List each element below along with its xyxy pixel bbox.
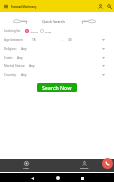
staticText: Religion: — [4, 47, 17, 51]
button[interactable]: Call us — [102, 158, 113, 169]
button[interactable]: Search Now — [37, 83, 77, 92]
button[interactable]: Country: — [0, 70, 114, 79]
button[interactable]: Register — [71, 159, 97, 172]
button[interactable]: My profile — [96, 0, 105, 12]
staticText: Any — [29, 64, 35, 68]
staticText: Search Now — [42, 84, 72, 91]
button[interactable]: Caste: — [0, 53, 114, 62]
button[interactable]: Login — [13, 159, 39, 172]
button[interactable]: Search — [105, 0, 114, 12]
button[interactable]: Recent apps — [79, 173, 86, 182]
staticText: Any — [21, 73, 27, 77]
staticText: Looking for — [4, 29, 21, 33]
staticText: - — [62, 38, 63, 42]
button[interactable]: Bride — [40, 29, 52, 33]
staticText: Groom — [30, 30, 39, 33]
staticText: Register — [80, 167, 89, 170]
staticText: Bride — [45, 30, 52, 33]
button[interactable]: Age between — [0, 35, 114, 44]
button[interactable]: Religion: — [0, 44, 114, 53]
staticText: Any — [21, 47, 27, 51]
staticText: Starsaad Matrimony — [11, 5, 37, 8]
staticText: Caste: — [4, 56, 13, 60]
button[interactable]: Open navigation menu — [0, 0, 11, 12]
button[interactable]: Home — [54, 173, 61, 182]
button[interactable]: Groom — [25, 29, 39, 33]
staticText: Any — [17, 56, 23, 60]
staticText: Age between — [4, 38, 24, 42]
staticText: Login — [23, 167, 29, 170]
staticText: Marital Status: — [4, 64, 25, 68]
staticText: Quick Search — [42, 19, 65, 24]
staticText: 18 — [32, 38, 36, 42]
button[interactable]: Back — [29, 173, 36, 182]
staticText: 30 — [68, 38, 72, 42]
button[interactable]: Marital Status: — [0, 61, 114, 70]
staticText: Country: — [4, 73, 17, 77]
